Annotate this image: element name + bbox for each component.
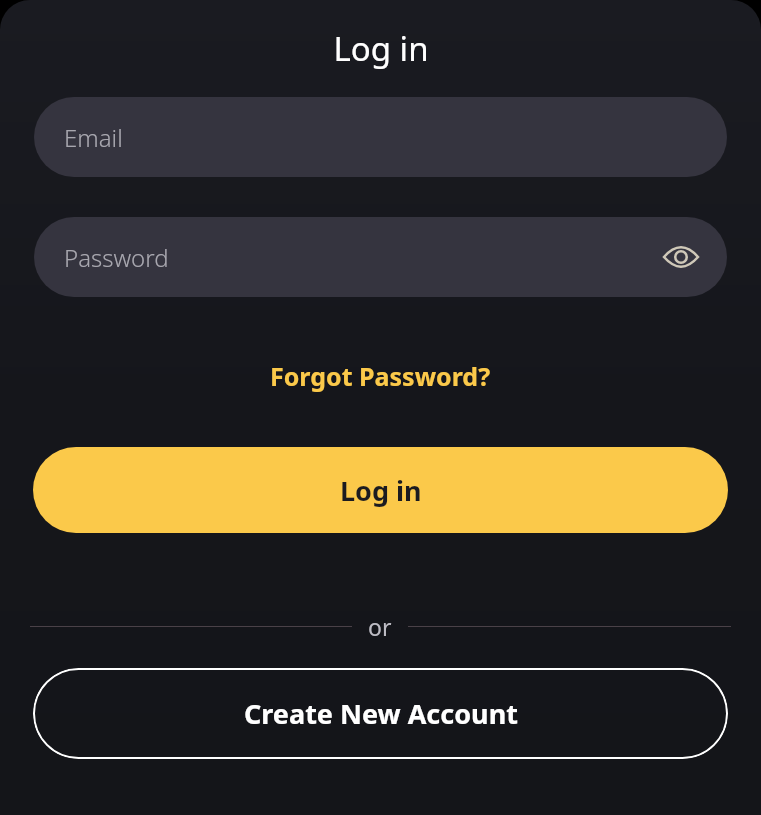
staticText: Password	[64, 241, 169, 274]
button[interactable]: Email	[34, 97, 727, 177]
button[interactable]: Forgot Password?	[260, 355, 501, 397]
staticText: Log in	[333, 26, 429, 71]
staticText: Log in	[340, 472, 422, 509]
button[interactable]: Password	[34, 217, 727, 297]
button[interactable]: Log in	[33, 447, 728, 533]
staticText: or	[368, 611, 392, 642]
button[interactable]: Create New Account	[33, 668, 728, 759]
button[interactable]: Show password	[657, 233, 705, 281]
staticText: Forgot Password?	[270, 359, 491, 393]
staticText: Create New Account	[244, 695, 518, 732]
staticText: Email	[64, 121, 123, 154]
